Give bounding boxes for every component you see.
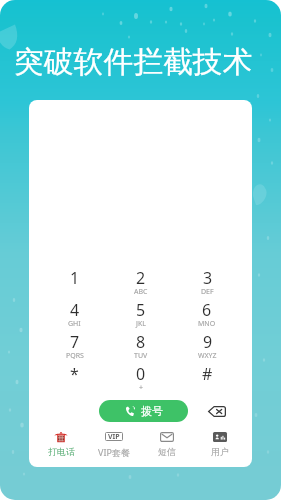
staticText: ABC [134,287,148,297]
staticText: 7 [70,331,80,353]
button[interactable]: VIP [87,431,140,463]
staticText: GHI [68,319,81,329]
staticText: 2 [136,267,146,289]
staticText: 突破软件拦截技术 [14,43,253,81]
button[interactable]: 用户 [193,431,246,463]
staticText: 打电话 [48,446,75,457]
staticText: 1 [70,267,80,289]
button[interactable]: 短信 [140,431,193,463]
button[interactable]: 4 [41,299,108,331]
staticText: 9 [203,331,213,353]
staticText: 6 [202,299,212,321]
staticText: * [70,363,79,385]
staticText: 短信 [158,446,176,457]
button[interactable]: 9 [174,331,240,363]
staticText: 拨号 [141,404,163,418]
staticText: + [139,383,144,393]
button[interactable]: 5 [108,299,174,331]
button[interactable]: * [41,363,108,395]
staticText: 8 [136,331,146,353]
button[interactable]: 拨号 [99,400,188,422]
button[interactable]: 2 [108,267,174,299]
staticText: VIP [108,432,120,441]
staticText: DEF [201,287,214,297]
button[interactable]: Backspace [202,399,232,423]
staticText: MNO [198,319,216,329]
staticText: WXYZ [198,351,217,361]
staticText: 4 [70,299,80,321]
button[interactable]: 8 [108,331,174,363]
button[interactable]: 1 [41,267,108,299]
staticText: 5 [136,299,146,321]
button[interactable]: 7 [41,331,108,363]
staticText: # [202,363,213,385]
button[interactable]: # [174,363,240,395]
staticText: PQRS [66,351,84,361]
staticText: 用户 [211,446,229,457]
staticText: 3 [203,267,213,289]
button[interactable]: 6 [174,299,240,331]
staticText: 0 [136,363,146,385]
staticText: VIP套餐 [98,446,130,458]
button[interactable]: 3 [174,267,240,299]
staticText: JKL [136,319,146,329]
staticText: TUV [134,351,148,361]
button[interactable]: 打电话 [35,431,87,463]
button[interactable]: 0 [108,363,174,395]
